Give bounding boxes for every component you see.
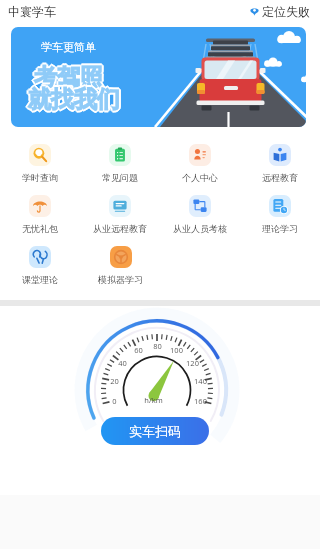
staticText: 模拟器学习: [98, 274, 143, 285]
staticText: 140: [194, 376, 207, 386]
staticText: 课堂理论: [22, 274, 58, 285]
staticText: 从业人员考核: [173, 223, 227, 234]
staticText: 考驾照: [35, 62, 104, 91]
button[interactable]: 无忧礼包: [22, 195, 58, 234]
staticText: 远程教育: [262, 172, 298, 183]
button[interactable]: 远程教育: [262, 144, 298, 183]
button[interactable]: 从业人员考核: [173, 195, 227, 234]
staticText: 考驾照: [33, 62, 102, 91]
staticText: 就找我们: [29, 84, 121, 113]
staticText: 0: [112, 396, 117, 406]
staticText: 考驾照: [32, 63, 101, 92]
staticText: 常见问题: [102, 172, 138, 183]
staticText: 就找我们: [28, 83, 120, 112]
staticText: 就找我们: [27, 86, 119, 115]
staticText: 就找我们: [29, 86, 121, 115]
staticText: 考驾照: [34, 63, 103, 92]
staticText: 就找我们: [28, 85, 120, 114]
staticText: 实车扫码: [129, 423, 181, 439]
staticText: 考驾照: [34, 61, 103, 90]
staticText: 40: [118, 358, 127, 368]
button[interactable]: 学车更简单: [11, 27, 306, 127]
staticText: 160: [194, 396, 207, 406]
staticText: 就找我们: [26, 85, 118, 114]
staticText: 100: [170, 345, 183, 355]
staticText: 80: [153, 341, 162, 351]
staticText: 就找我们: [28, 87, 120, 116]
button[interactable]: 课堂理论: [22, 246, 58, 285]
staticText: 定位失败: [262, 4, 310, 19]
staticText: 无忧礼包: [22, 223, 58, 234]
other: Location: [250, 7, 259, 16]
staticText: 学时查询: [22, 172, 58, 183]
staticText: 120: [186, 358, 199, 368]
staticText: 考驾照: [34, 65, 103, 94]
button[interactable]: 常见问题: [102, 144, 138, 183]
staticText: 理论学习: [262, 223, 298, 234]
staticText: 考驾照: [33, 64, 102, 93]
button[interactable]: 从业远程教育: [93, 195, 147, 234]
staticText: 中寰学车: [8, 4, 56, 19]
staticText: 60: [134, 345, 143, 355]
staticText: 就找我们: [30, 85, 122, 114]
staticText: 考驾照: [35, 64, 104, 93]
button[interactable]: 模拟器学习: [98, 246, 143, 285]
staticText: 20: [110, 376, 119, 386]
staticText: 考驾照: [36, 63, 105, 92]
button[interactable]: 个人中心: [182, 144, 218, 183]
staticText: h/km: [144, 395, 163, 405]
button[interactable]: 实车扫码: [101, 417, 209, 445]
button[interactable]: Location: [250, 4, 310, 19]
staticText: 个人中心: [182, 172, 218, 183]
button[interactable]: 理论学习: [262, 195, 298, 234]
staticText: 从业远程教育: [93, 223, 147, 234]
button[interactable]: 学时查询: [22, 144, 58, 183]
staticText: 就找我们: [27, 84, 119, 113]
staticText: 学车更简单: [41, 40, 96, 54]
